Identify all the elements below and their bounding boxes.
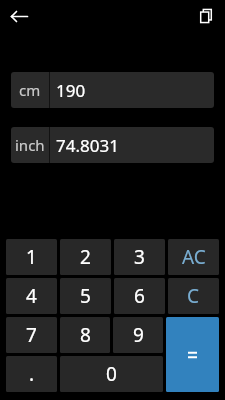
- staticText: 7: [26, 322, 37, 348]
- button[interactable]: 1: [6, 239, 57, 275]
- staticText: C: [187, 283, 200, 309]
- staticText: 0: [106, 361, 117, 387]
- staticText: 4: [26, 283, 37, 309]
- button[interactable]: .: [6, 356, 57, 392]
- staticText: 9: [133, 322, 144, 348]
- button[interactable]: 7: [6, 317, 57, 353]
- button[interactable]: cm: [11, 72, 214, 108]
- button[interactable]: 3: [114, 239, 165, 275]
- button[interactable]: Back: [5, 2, 34, 31]
- button[interactable]: 6: [114, 278, 165, 314]
- staticText: 5: [80, 283, 91, 309]
- button[interactable]: inch: [11, 127, 214, 163]
- staticText: 1: [26, 244, 37, 270]
- staticText: 3: [134, 244, 145, 270]
- button[interactable]: 0: [60, 356, 163, 392]
- button[interactable]: 4: [6, 278, 57, 314]
- staticText: 6: [134, 283, 145, 309]
- button[interactable]: 5: [60, 278, 111, 314]
- staticText: 2: [80, 244, 91, 270]
- staticText: inch: [15, 135, 45, 155]
- button[interactable]: 8: [60, 317, 110, 353]
- button[interactable]: Equals: [166, 317, 219, 392]
- button[interactable]: 2: [60, 239, 111, 275]
- staticText: 74.8031: [56, 134, 119, 157]
- button[interactable]: C: [168, 278, 219, 314]
- staticText: cm: [19, 80, 41, 100]
- button[interactable]: 9: [113, 317, 163, 353]
- staticText: 8: [80, 322, 91, 348]
- staticText: AC: [182, 244, 206, 270]
- button[interactable]: AC: [168, 239, 219, 275]
- staticText: 190: [56, 79, 86, 102]
- staticText: .: [29, 361, 35, 387]
- button[interactable]: Copy: [193, 3, 219, 29]
